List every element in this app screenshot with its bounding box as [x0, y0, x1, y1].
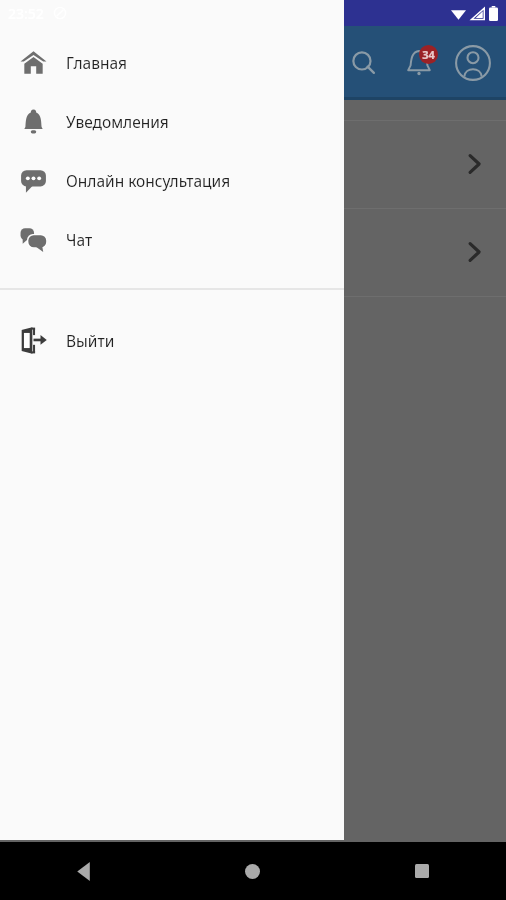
- button[interactable]: Profile: [448, 38, 498, 88]
- staticText: 34: [422, 47, 435, 62]
- button[interactable]: Уведомления: [0, 92, 344, 151]
- button[interactable]: Выйти: [0, 311, 344, 370]
- staticText: Выйти: [66, 330, 115, 351]
- button[interactable]: Home: [168, 842, 337, 900]
- staticText: Онлайн консультация: [66, 170, 231, 191]
- button[interactable]: Notifications: [394, 38, 444, 88]
- button[interactable]: Онлайн консультация: [0, 151, 344, 210]
- button[interactable]: Back: [0, 842, 168, 900]
- button[interactable]: Главная: [0, 33, 344, 92]
- staticText: Уведомления: [66, 111, 169, 132]
- button[interactable]: Recents: [337, 842, 506, 900]
- button[interactable]: [0, 208, 506, 296]
- staticText: Чат: [66, 229, 93, 250]
- button[interactable]: Search: [340, 39, 388, 87]
- button[interactable]: Чат: [0, 210, 344, 269]
- staticText: Главная: [66, 52, 127, 73]
- button[interactable]: [0, 120, 506, 208]
